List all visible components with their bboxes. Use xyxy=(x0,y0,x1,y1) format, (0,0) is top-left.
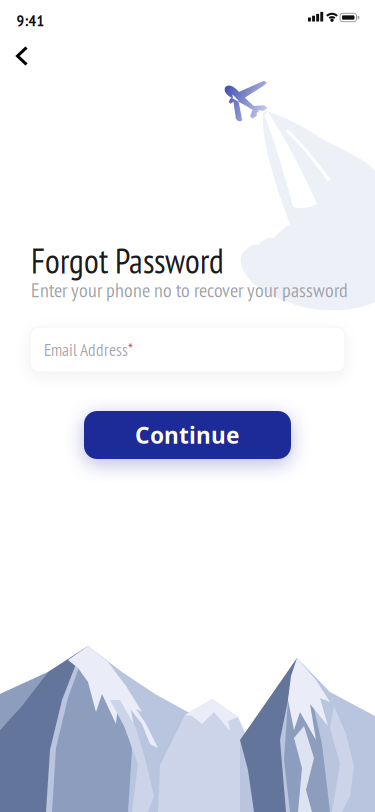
staticText: Forgot Password xyxy=(31,239,224,283)
button[interactable]: Email Address xyxy=(30,327,345,372)
staticText: Enter your phone no to recover your pass… xyxy=(31,277,348,303)
staticText: Continue xyxy=(135,420,240,450)
button[interactable]: Continue xyxy=(84,411,291,459)
staticText: Email Address xyxy=(44,338,128,361)
staticText: * xyxy=(128,338,133,361)
button[interactable]: Back xyxy=(6,36,38,76)
staticText: 9:41 xyxy=(16,10,44,31)
